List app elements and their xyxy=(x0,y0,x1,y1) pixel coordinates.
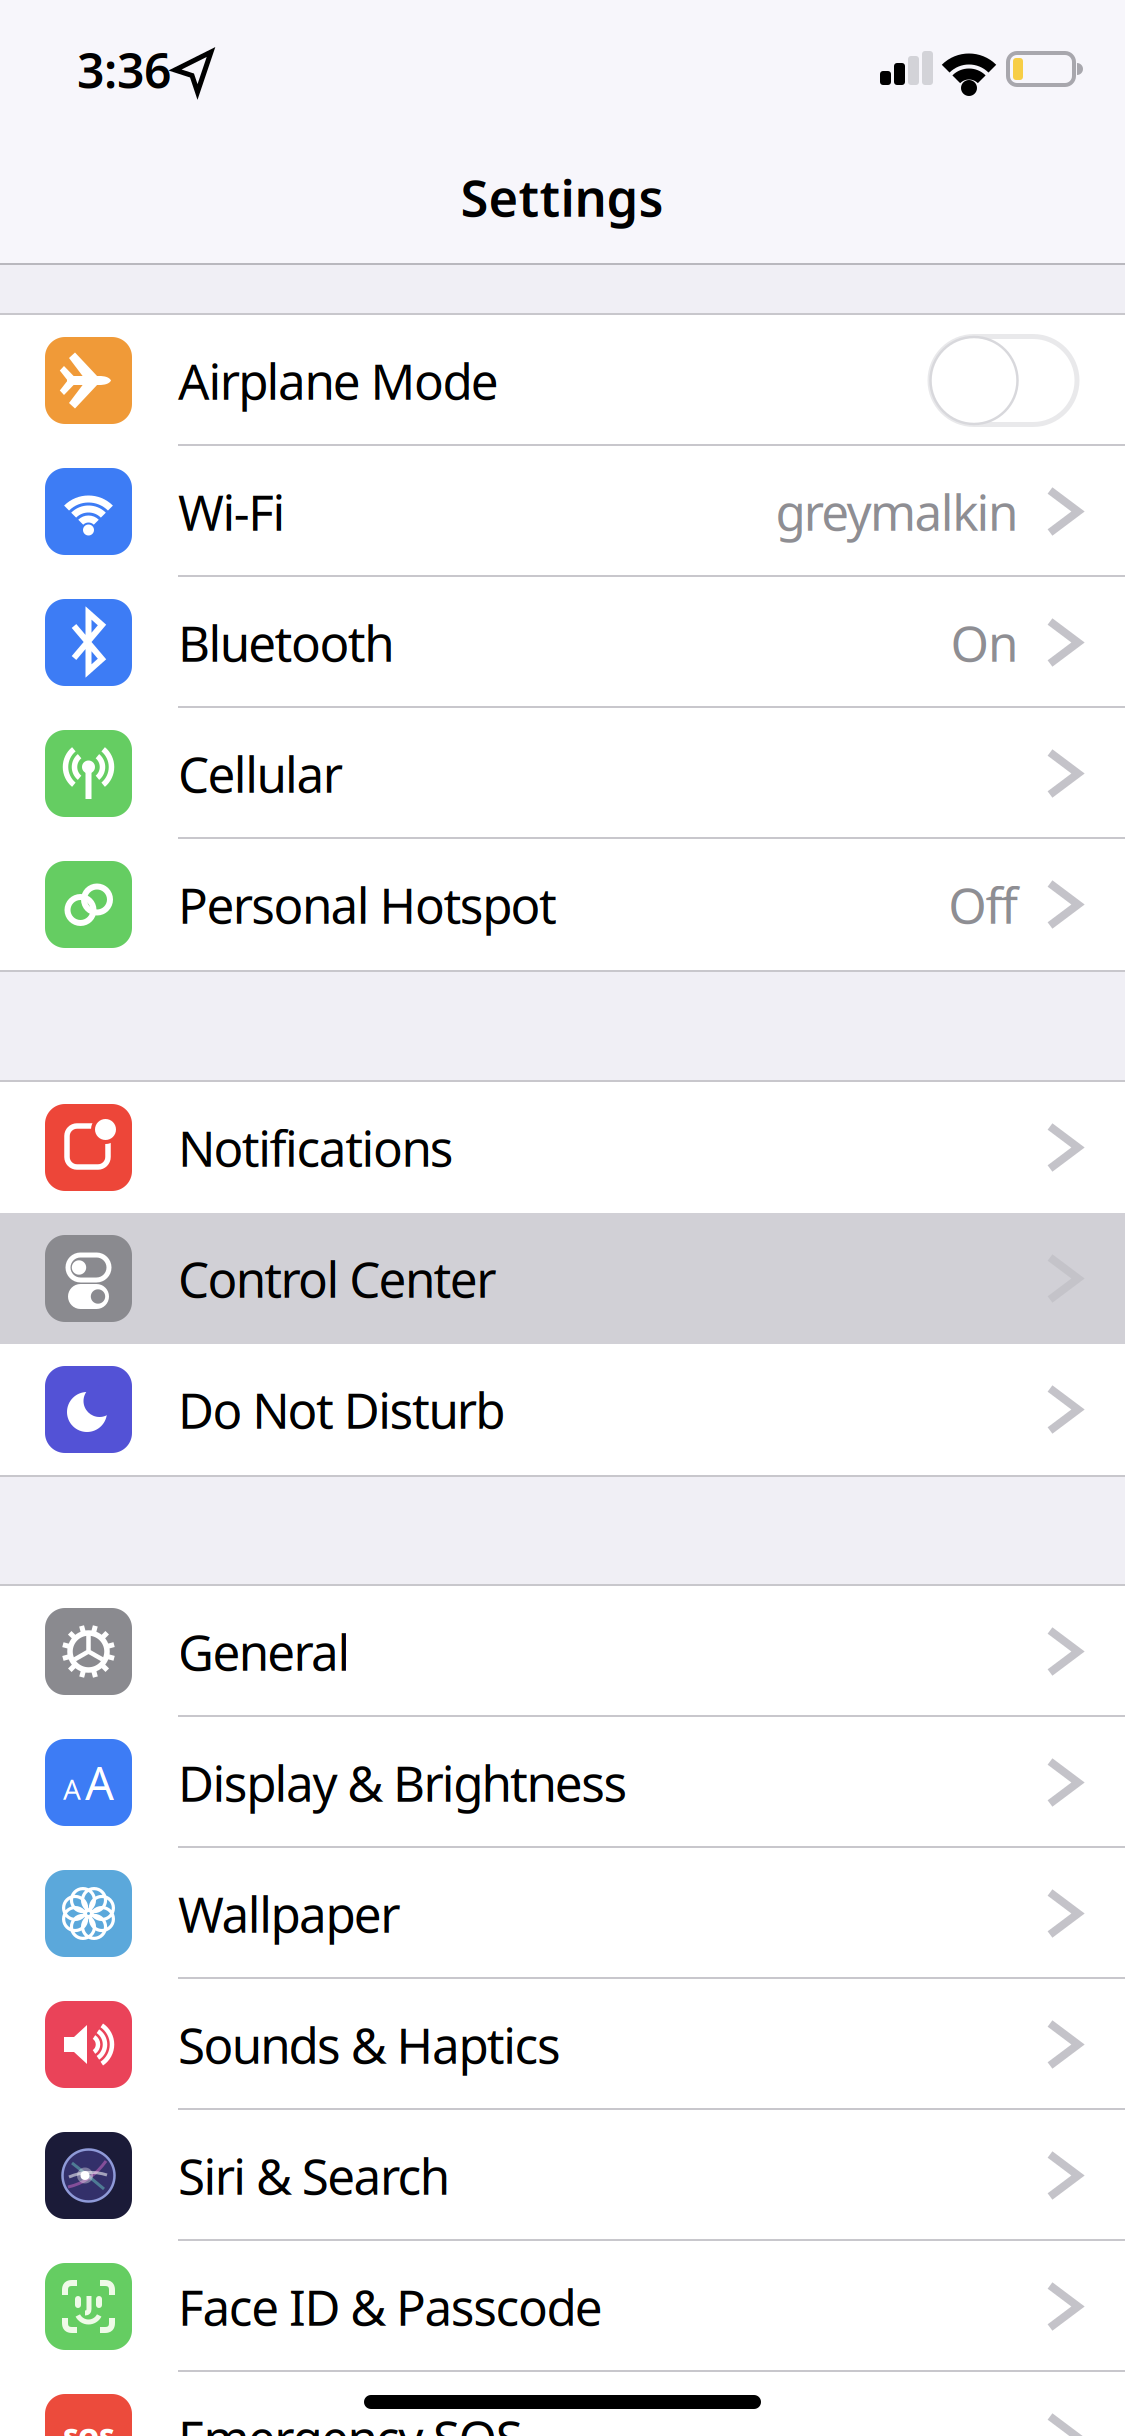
button[interactable]: Personal Hotspot xyxy=(0,839,1125,970)
staticText: Wi-Fi xyxy=(178,479,286,544)
button[interactable]: Control Center xyxy=(0,1213,1125,1344)
staticText: Airplane Mode xyxy=(178,348,499,413)
staticText: Cellular xyxy=(178,741,343,806)
staticText: On xyxy=(951,610,1018,675)
staticText: Emergency SOS xyxy=(178,2405,523,2436)
button[interactable]: Sounds & Haptics xyxy=(0,1979,1125,2110)
staticText: Control Center xyxy=(178,1246,496,1311)
button[interactable]: Wi-Fi xyxy=(0,446,1125,577)
staticText: General xyxy=(178,1619,350,1684)
button[interactable]: Siri & Search xyxy=(0,2110,1125,2241)
button[interactable]: General xyxy=(0,1586,1125,1717)
button[interactable]: Bluetooth xyxy=(0,577,1125,708)
staticText: Wallpaper xyxy=(178,1881,400,1946)
staticText: Sounds & Haptics xyxy=(178,2012,561,2077)
staticText: Display & Brightness xyxy=(178,1750,628,1815)
button[interactable]: Wallpaper xyxy=(0,1848,1125,1979)
staticText: Personal Hotspot xyxy=(178,872,557,937)
staticText: Off xyxy=(948,872,1018,937)
staticText: Siri & Search xyxy=(178,2143,450,2208)
button[interactable]: Face ID & Passcode xyxy=(0,2241,1125,2372)
staticText: A xyxy=(85,1752,114,1813)
staticText: A xyxy=(63,1770,81,1808)
staticText: Bluetooth xyxy=(178,610,394,675)
staticText: Notifications xyxy=(178,1115,454,1180)
button[interactable]: Airplane Mode xyxy=(0,315,1125,446)
staticText: Settings xyxy=(460,163,663,231)
button[interactable]: Do Not Disturb xyxy=(0,1344,1125,1475)
button[interactable]: Cellular xyxy=(0,708,1125,839)
button[interactable]: A xyxy=(0,1717,1125,1848)
staticText: 3:36 xyxy=(77,38,171,102)
button[interactable]: Notifications xyxy=(0,1082,1125,1213)
staticText: SOS xyxy=(63,2420,114,2436)
staticText: greymalkin xyxy=(775,479,1018,544)
button[interactable]: SOS xyxy=(0,2372,1125,2436)
staticText: Face ID & Passcode xyxy=(178,2274,603,2339)
staticText: Do Not Disturb xyxy=(178,1377,505,1442)
